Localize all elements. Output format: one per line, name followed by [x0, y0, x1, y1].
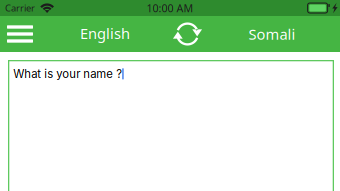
button[interactable]: Somali — [238, 16, 305, 52]
staticText: 10:00 AM — [146, 1, 193, 15]
button[interactable]: English — [70, 15, 140, 51]
staticText: Carrier — [5, 2, 35, 14]
button[interactable]: Menu — [0, 16, 40, 52]
staticText: Somali — [248, 24, 295, 44]
button[interactable]: Text to translate — [8, 60, 334, 191]
staticText: English — [80, 23, 130, 43]
staticText: What is your name ? — [13, 67, 122, 81]
button[interactable]: Swap languages — [168, 15, 206, 53]
